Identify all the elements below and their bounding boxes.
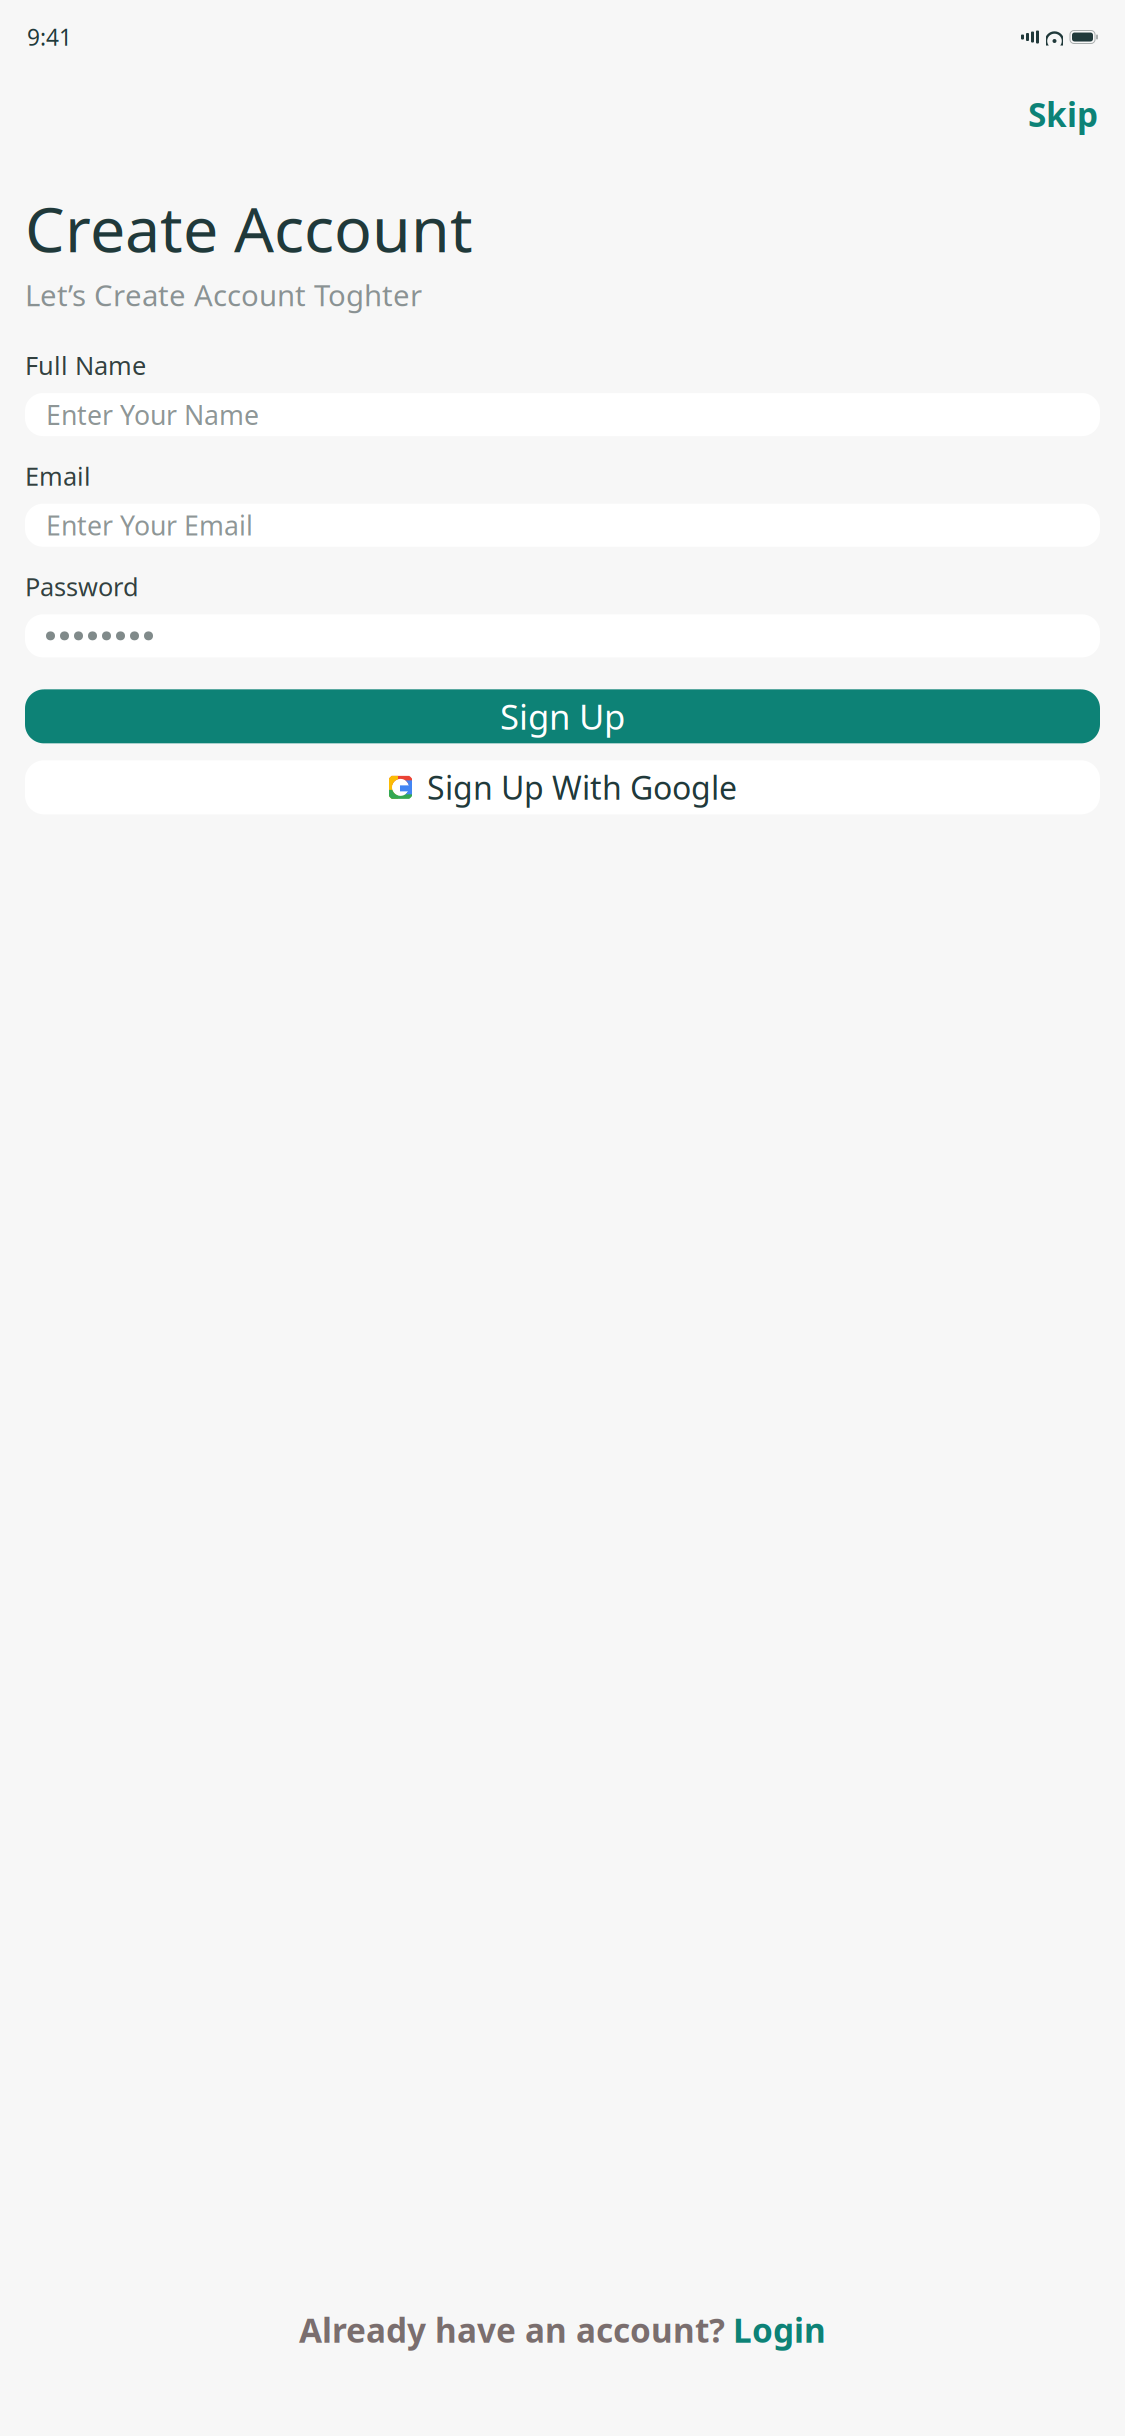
staticText: Create Account <box>25 186 473 269</box>
staticText: Sign Up With Google <box>427 766 737 809</box>
staticText: Let’s Create Account Toghter <box>25 275 422 314</box>
staticText: Full Name <box>25 348 146 382</box>
button[interactable]: Already have an account? <box>0 2300 1125 2360</box>
button[interactable]: Sign Up With Google <box>25 760 1100 814</box>
button[interactable]: Sign Up <box>25 689 1100 743</box>
button[interactable]: Skip <box>1018 86 1108 142</box>
staticText: Password <box>25 570 139 603</box>
button[interactable]: Enter Your Email <box>25 504 1100 547</box>
button[interactable]: Enter Your Name <box>25 393 1100 436</box>
staticText: Login <box>733 2308 826 2352</box>
staticText: Skip <box>1028 92 1098 136</box>
staticText: Already have an account? <box>299 2308 725 2352</box>
staticText: Enter Your Name <box>46 397 259 432</box>
staticText: Enter Your Email <box>46 507 253 543</box>
button[interactable] <box>25 614 1100 657</box>
staticText: Email <box>25 459 91 493</box>
staticText: 9:41 <box>27 22 72 52</box>
staticText: Sign Up <box>500 693 625 739</box>
